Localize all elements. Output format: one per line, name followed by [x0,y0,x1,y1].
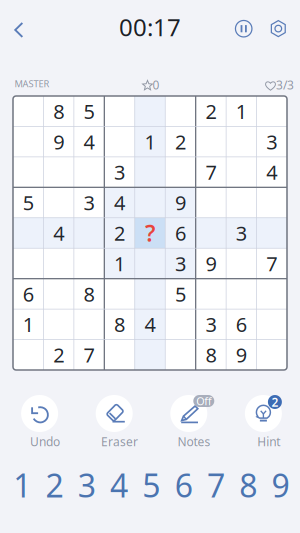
button[interactable]: 3 [71,465,103,505]
staticText: 5 [175,281,186,307]
staticText: 3 [205,311,216,338]
staticText: 2 [114,220,125,246]
staticText: MASTER [14,77,49,90]
staticText: 9 [236,341,247,368]
staticText: 7 [205,159,216,185]
staticText: 9 [271,464,289,506]
staticText: 1 [23,311,34,338]
staticText: 4 [266,159,277,185]
button[interactable]: Eraser [82,387,157,451]
staticText: 3 [266,128,277,155]
staticText: 3 [84,189,95,216]
button[interactable]: Off [157,387,231,451]
staticText: Undo [30,433,60,449]
button[interactable]: 2 [231,387,300,451]
staticText: Off [196,394,211,408]
staticText: 3 [78,464,96,506]
button[interactable]: 8 [232,465,264,505]
staticText: Hint [257,433,280,449]
staticText: 7 [84,341,95,368]
staticText: 5 [84,98,95,124]
button[interactable]: Pause [228,13,260,45]
staticText: 6 [175,220,186,246]
staticText: Notes [178,433,211,449]
button[interactable]: 1 [6,465,38,505]
staticText: 5 [23,189,34,216]
button[interactable]: 5 [135,465,167,505]
staticText: 6 [175,464,193,506]
staticText: 2 [53,341,64,368]
staticText: 7 [207,464,225,506]
staticText: 1 [236,98,247,124]
staticText: 8 [84,281,95,307]
staticText: 00:17 [119,11,181,43]
staticText: 8 [53,98,64,124]
staticText: 8 [114,311,125,338]
button[interactable]: Undo [8,387,82,451]
staticText: 3 [175,250,186,277]
staticText: 1 [114,250,125,277]
staticText: 2 [271,394,278,410]
staticText: 1 [13,464,31,506]
staticText: 4 [53,220,64,246]
staticText: 8 [239,464,257,506]
button[interactable]: 9 [264,465,297,505]
staticText: 9 [53,128,64,155]
staticText: 3 [114,159,125,185]
button[interactable]: Back [2,13,36,47]
staticText: 3/3 [276,77,294,93]
staticText: Eraser [101,433,138,449]
staticText: 3 [236,220,247,246]
staticText: 4 [84,128,95,155]
staticText: 4 [114,189,125,216]
button[interactable]: Settings [262,13,294,45]
staticText: 4 [110,464,128,506]
staticText: 2 [175,128,186,155]
button[interactable]: 6 [167,465,200,505]
staticText: 8 [205,341,216,368]
button[interactable]: 2 [38,465,71,505]
staticText: 1 [144,128,155,155]
staticText: ? [145,218,155,248]
staticText: 2 [205,98,216,124]
staticText: 6 [236,311,247,338]
button[interactable]: 4 [103,465,135,505]
staticText: 2 [45,464,63,506]
staticText: 9 [175,189,186,216]
staticText: 6 [23,281,34,307]
button[interactable]: 7 [200,465,232,505]
staticText: 5 [142,464,160,506]
staticText: 9 [205,250,216,277]
staticText: 4 [144,311,155,338]
staticText: 0 [152,77,159,93]
staticText: 7 [266,250,277,277]
